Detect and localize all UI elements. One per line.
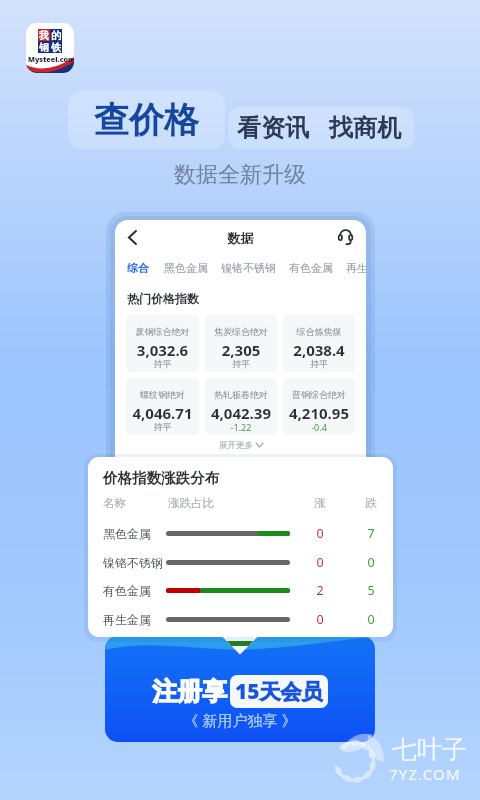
staticText: 3,032.6 [126,340,199,360]
staticText: 7 [356,525,386,542]
staticText: 跌 [356,496,386,510]
staticText: 涨 [305,496,335,510]
button[interactable]: 焦炭综合绝对 [205,315,277,372]
staticText: 热门价格指数 [127,291,199,306]
staticText: 铁 [51,41,61,53]
staticText: 找商机 [329,113,401,143]
staticText: -1.22 [205,421,277,433]
button[interactable]: 查价格 [68,91,225,149]
staticText: 查价格 [94,98,199,142]
button[interactable]: 黑色金属 [164,261,208,275]
staticText: 有色金属 [103,583,151,598]
button[interactable]: Back [119,224,145,250]
staticText: 5 [356,582,386,599]
staticText: 废钢综合绝对 [126,326,199,337]
staticText: 数据全新升级 [174,161,306,189]
staticText: 2,038.4 [283,340,355,360]
button[interactable]: 热轧板卷绝对 [205,378,277,435]
staticText: 涨跌占比 [168,496,214,510]
button[interactable]: 镍铬不锈钢 [88,549,393,577]
staticText: 0 [356,611,386,628]
staticText: 注册享 [152,676,227,707]
staticText: 《 新用户独享 》 [105,710,375,730]
staticText: 价格指数涨跌分布 [103,469,219,487]
button[interactable]: Customer service [333,225,357,249]
button[interactable]: 废钢综合绝对 [126,315,199,372]
staticText: 七叶子 [392,734,467,765]
button[interactable]: Back [237,226,261,250]
staticText: 黑色金属 [103,526,151,541]
button[interactable]: 综合 [127,261,149,275]
staticText: -0.4 [283,421,355,433]
button[interactable]: 注册享 [105,636,375,742]
staticText: 0 [356,554,386,571]
staticText: 再生金属 [103,612,151,627]
staticText: 持平 [205,358,277,369]
staticText: 2,305 [205,340,277,360]
staticText: 2 [305,582,335,599]
staticText: 我 [39,29,49,41]
staticText: 4,042.39 [205,403,277,423]
staticText: 名称 [103,496,126,510]
button[interactable]: 黑色金属 [88,520,393,548]
staticText: 持平 [283,358,355,369]
staticText: 螺纹钢绝对 [126,389,199,400]
button[interactable]: 螺纹钢绝对 [126,378,199,435]
staticText: 普钢综合绝对 [283,389,355,400]
staticText: 0 [305,525,335,542]
staticText: 0 [305,554,335,571]
staticText: 再生 [346,261,366,275]
staticText: 7YZ.COM [389,764,461,784]
staticText: 数据 [115,230,366,246]
staticText: 镍铬不锈钢 [103,555,163,570]
button[interactable]: 综合炼焦煤 [283,315,355,372]
staticText: 持平 [126,358,199,369]
staticText: 钢 [39,41,49,53]
button[interactable]: 找商机 [329,113,401,143]
staticText: 的 [51,29,61,41]
staticText: 4,046.71 [126,403,199,423]
staticText: 持平 [126,421,199,432]
staticText: 15天会员 [235,677,323,706]
staticText: 看资讯 [237,113,309,143]
staticText: 综合 [127,261,149,275]
staticText: 热轧板卷绝对 [205,389,277,400]
button[interactable]: Mysteel app icon [26,23,74,73]
staticText: 综合炼焦煤 [283,326,355,337]
button[interactable]: 展开更多 [115,436,366,454]
staticText: 4,210.95 [283,403,355,423]
staticText: 0 [305,611,335,628]
button[interactable]: 再生 [346,261,366,275]
button[interactable]: 有色金属 [289,261,333,275]
staticText: 焦炭综合绝对 [205,326,277,337]
staticText: Mysteel.com [28,54,74,64]
button[interactable]: 普钢综合绝对 [283,378,355,435]
staticText: 有色金属 [289,261,333,275]
staticText: 展开更多 [219,440,253,451]
button[interactable]: 有色金属 [88,577,393,605]
button[interactable]: 再生金属 [88,606,393,634]
staticText: 镍铬不锈钢 [221,261,276,275]
button[interactable]: 看资讯 [237,113,309,143]
button[interactable]: 镍铬不锈钢 [221,261,276,275]
staticText: 黑色金属 [164,261,208,275]
